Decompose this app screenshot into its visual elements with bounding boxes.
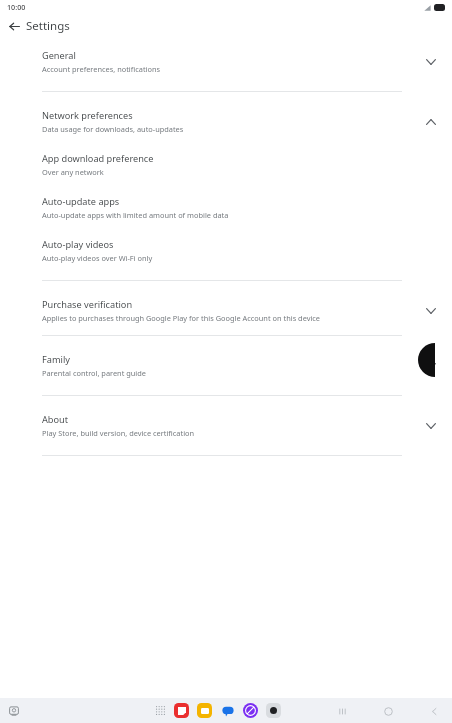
staticText: Auto-play videos over Wi-Fi only <box>42 253 153 263</box>
button[interactable]: Auto-update apps <box>0 195 452 220</box>
button[interactable]: Camera <box>266 703 281 718</box>
button[interactable]: All apps <box>155 705 166 716</box>
button[interactable]: Messages <box>220 703 235 718</box>
staticText: Auto-update apps with limited amount of … <box>42 210 229 220</box>
button[interactable]: Browser <box>243 703 258 718</box>
button[interactable]: General <box>0 49 452 74</box>
button[interactable]: Back <box>4 16 24 36</box>
staticText: Purchase verification <box>42 298 133 311</box>
staticText: Data usage for downloads, auto-updates <box>42 124 184 134</box>
staticText: Applies to purchases through Google Play… <box>42 313 321 323</box>
staticText: Play Store, build version, device certif… <box>42 428 195 438</box>
button[interactable]: Recents <box>334 703 350 719</box>
button[interactable]: Auto-play videos <box>0 238 452 263</box>
staticText: About <box>42 413 69 426</box>
button[interactable]: Home <box>380 703 396 719</box>
button[interactable]: Network preferences <box>0 109 452 134</box>
staticText: General <box>42 49 76 62</box>
staticText: Auto-update apps <box>42 195 120 208</box>
staticText: Account preferences, notifications <box>42 64 161 74</box>
staticText: App download preference <box>42 152 154 165</box>
staticText: Settings <box>26 18 70 34</box>
button[interactable]: Keep <box>174 703 189 718</box>
staticText: Over any network <box>42 167 104 177</box>
button[interactable]: Purchase verification <box>0 298 452 323</box>
button[interactable]: Play Books <box>197 703 212 718</box>
button[interactable]: About <box>0 413 452 438</box>
button[interactable]: Family <box>0 353 452 378</box>
button[interactable]: Recent apps <box>7 704 21 718</box>
staticText: Auto-play videos <box>42 238 114 251</box>
staticText: 10:00 <box>7 2 26 12</box>
staticText: Parental control, parent guide <box>42 368 146 378</box>
staticText: Family <box>42 353 70 366</box>
button[interactable]: App download preference <box>0 152 452 177</box>
button[interactable]: Back <box>426 703 442 719</box>
staticText: Network preferences <box>42 109 133 122</box>
